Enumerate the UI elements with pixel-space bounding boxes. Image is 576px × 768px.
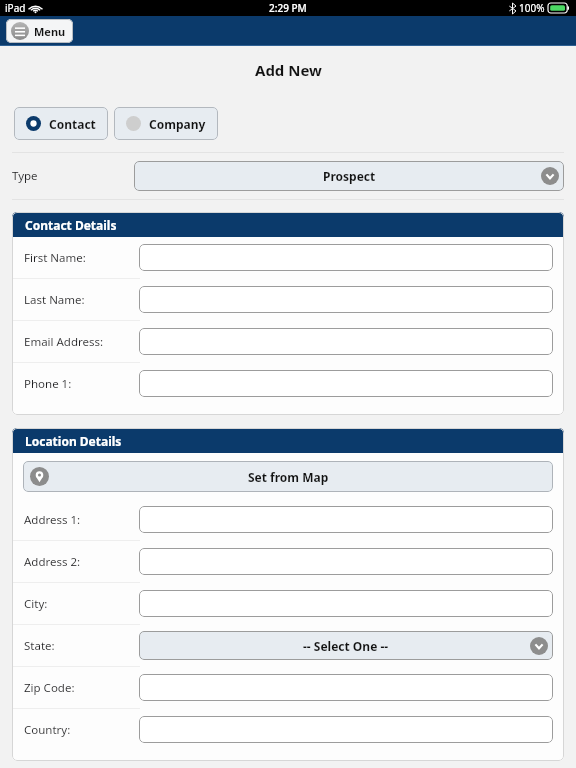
button[interactable] (139, 244, 553, 271)
button[interactable]: Pick location on map (23, 461, 553, 492)
staticText: State: (24, 638, 55, 654)
staticText: 100% (519, 1, 545, 15)
staticText: Country: (24, 722, 71, 738)
staticText: Set from Map (248, 469, 329, 485)
button[interactable] (139, 328, 553, 355)
staticText: iPad (5, 1, 26, 15)
button[interactable]: Company (114, 107, 218, 140)
staticText: Address 1: (24, 512, 81, 528)
button[interactable]: Contact (14, 107, 108, 140)
staticText: Prospect (323, 168, 376, 184)
other: Pick location on map (30, 467, 49, 486)
staticText: 2:29 PM (269, 1, 307, 15)
staticText: Menu (34, 24, 66, 39)
button[interactable] (139, 370, 553, 397)
button[interactable] (139, 674, 553, 701)
staticText: Email Address: (24, 334, 104, 350)
staticText: Type (12, 168, 38, 184)
staticText: Company (149, 116, 206, 132)
button[interactable]: Menu (6, 19, 73, 43)
button[interactable] (139, 716, 553, 743)
staticText: First Name: (24, 250, 86, 266)
other: Open picker (541, 167, 559, 185)
button[interactable] (139, 590, 553, 617)
staticText: Contact (49, 116, 96, 132)
button[interactable] (139, 286, 553, 313)
button[interactable] (139, 548, 553, 575)
button[interactable]: Prospect (134, 161, 564, 191)
staticText: Location Details (25, 433, 122, 449)
staticText: Last Name: (24, 292, 85, 308)
staticText: Zip Code: (24, 680, 75, 696)
staticText: Phone 1: (24, 376, 72, 392)
staticText: -- Select One -- (303, 638, 389, 654)
staticText: City: (24, 596, 48, 612)
staticText: Add New (255, 60, 322, 80)
other: Open picker (530, 637, 548, 655)
staticText: Address 2: (24, 554, 81, 570)
button[interactable] (139, 506, 553, 533)
staticText: Contact Details (25, 217, 117, 233)
button[interactable]: -- Select One -- (139, 631, 553, 660)
